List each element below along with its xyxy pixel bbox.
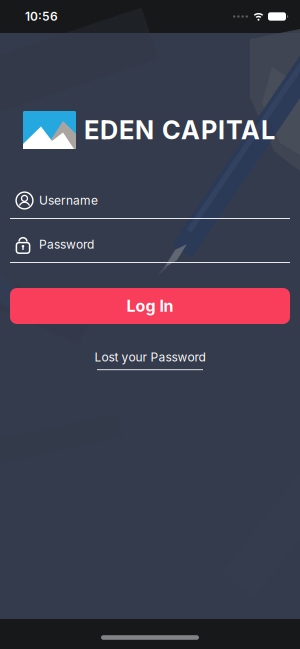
- staticText: Lost your Password: [94, 350, 205, 364]
- button[interactable]: Password: [10, 235, 290, 263]
- staticText: Password: [39, 237, 94, 252]
- button[interactable]: Log In: [10, 288, 290, 324]
- staticText: Username: [39, 193, 98, 208]
- staticText: 10:56: [25, 9, 58, 24]
- staticText: EDEN CAPITAL: [84, 115, 275, 145]
- button[interactable]: Username: [10, 191, 290, 219]
- staticText: Log In: [126, 297, 173, 315]
- button[interactable]: Lost your Password: [94, 350, 205, 370]
